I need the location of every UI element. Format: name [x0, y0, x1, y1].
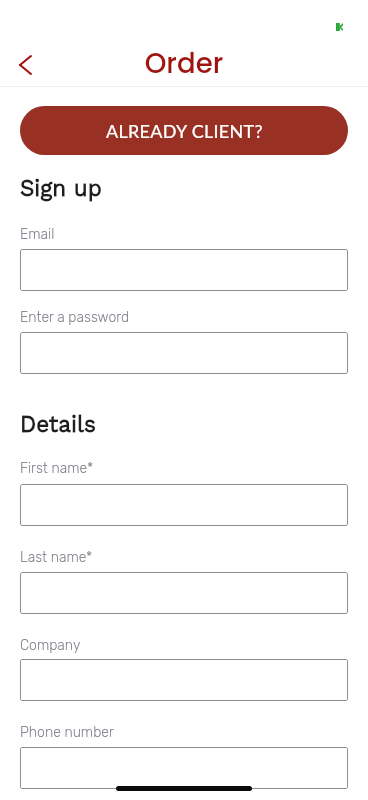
button[interactable]	[20, 659, 348, 701]
button[interactable]	[20, 332, 348, 374]
staticText: Last name*	[20, 549, 93, 566]
staticText: Enter a password	[20, 309, 130, 326]
staticText: Company	[20, 637, 81, 654]
button[interactable]	[20, 747, 348, 789]
other: App badge	[336, 23, 343, 31]
staticText: ALREADY CLIENT?	[106, 120, 263, 142]
button[interactable]: Back	[3, 43, 47, 87]
button[interactable]	[20, 572, 348, 614]
staticText: Sign up	[20, 175, 102, 201]
staticText: Email	[20, 226, 55, 243]
button[interactable]: ALREADY CLIENT?	[20, 106, 348, 155]
button[interactable]	[20, 484, 348, 526]
staticText: Phone number	[20, 724, 114, 741]
staticText: Details	[20, 411, 96, 437]
staticText: Order	[0, 44, 368, 83]
staticText: First name*	[20, 460, 94, 477]
button[interactable]	[20, 249, 348, 291]
